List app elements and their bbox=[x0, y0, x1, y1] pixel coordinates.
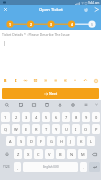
button[interactable]: B bbox=[56, 149, 65, 159]
button[interactable]: 2 bbox=[12, 112, 20, 122]
staticText: 5 bbox=[91, 22, 93, 27]
staticText: I bbox=[75, 127, 77, 132]
button[interactable]: Settings bbox=[66, 100, 79, 109]
button[interactable]: Undo bbox=[81, 76, 90, 85]
staticText: F bbox=[40, 139, 43, 144]
button[interactable]: 6 bbox=[52, 112, 60, 122]
button[interactable]: 1 bbox=[1, 112, 10, 122]
staticText: E bbox=[25, 127, 28, 132]
button[interactable]: I bbox=[72, 124, 80, 134]
button[interactable]: Italic bbox=[11, 76, 20, 85]
button[interactable]: A bbox=[6, 136, 15, 146]
button[interactable]: 5 bbox=[42, 112, 50, 122]
staticText: H bbox=[60, 139, 63, 144]
button[interactable]: Step 3 bbox=[47, 21, 54, 28]
button[interactable]: Translate bbox=[79, 100, 92, 109]
button[interactable]: Step 4 bbox=[68, 21, 75, 28]
button[interactable]: 0 bbox=[92, 112, 100, 122]
button[interactable]: F bbox=[37, 136, 45, 146]
button[interactable]: ?123 bbox=[1, 162, 12, 172]
button[interactable]: Z bbox=[14, 149, 22, 159]
staticText: 9 bbox=[85, 115, 88, 120]
button[interactable]: H bbox=[57, 136, 65, 146]
button[interactable]: Step 5 bbox=[88, 21, 95, 28]
button[interactable]: G bbox=[47, 136, 55, 146]
button[interactable]: S bbox=[17, 136, 25, 146]
staticText: O bbox=[84, 127, 88, 132]
button[interactable]: . bbox=[80, 162, 87, 172]
staticText: I bbox=[15, 78, 17, 83]
button[interactable]: K bbox=[77, 136, 85, 146]
button[interactable]: Code bbox=[51, 76, 60, 85]
staticText: B bbox=[4, 78, 7, 83]
button[interactable]: Bullet list bbox=[61, 76, 70, 85]
staticText: 4 bbox=[71, 22, 73, 27]
staticText: R bbox=[35, 127, 38, 132]
button[interactable]: Shift bbox=[1, 149, 12, 159]
button[interactable]: C bbox=[34, 149, 43, 159]
button[interactable]: 4 bbox=[32, 112, 40, 122]
staticText: , bbox=[17, 165, 18, 170]
button[interactable]: Clipboard bbox=[40, 100, 53, 109]
staticText: Y bbox=[55, 127, 58, 132]
button[interactable]: 8 bbox=[72, 112, 80, 122]
button[interactable]: Y bbox=[52, 124, 60, 134]
button[interactable]: English (UK) bbox=[23, 162, 78, 172]
button[interactable]: Voice input bbox=[53, 100, 66, 109]
staticText: G bbox=[50, 139, 53, 144]
button[interactable]: Send bbox=[91, 5, 101, 14]
staticText: English (UK) bbox=[43, 165, 59, 169]
staticText: 2 bbox=[15, 115, 18, 120]
button[interactable]: R bbox=[32, 124, 40, 134]
button[interactable]: 9 bbox=[82, 112, 90, 122]
button[interactable]: Q bbox=[1, 124, 10, 134]
button[interactable]: Backspace bbox=[89, 149, 100, 159]
button[interactable]: V bbox=[45, 149, 54, 159]
staticText: Open Ticket bbox=[39, 7, 63, 13]
button[interactable]: More bbox=[92, 100, 101, 109]
button[interactable]: GIF bbox=[27, 100, 40, 109]
staticText: 3 bbox=[50, 22, 52, 27]
button[interactable]: J bbox=[67, 136, 75, 146]
button[interactable]: Next bbox=[2, 88, 99, 99]
button[interactable]: D bbox=[27, 136, 35, 146]
button[interactable]: 3 bbox=[22, 112, 30, 122]
button[interactable]: Image bbox=[31, 76, 40, 85]
staticText: U bbox=[65, 127, 68, 132]
staticText: L bbox=[90, 139, 93, 144]
button[interactable]: W bbox=[12, 124, 20, 134]
staticText: Next bbox=[49, 91, 58, 96]
button[interactable]: E bbox=[22, 124, 30, 134]
staticText: 3 bbox=[25, 115, 28, 120]
button[interactable]: Close bbox=[0, 5, 11, 14]
button[interactable]: Stickers bbox=[14, 100, 27, 109]
button[interactable]: 7 bbox=[62, 112, 70, 122]
button[interactable]: U bbox=[62, 124, 70, 134]
button[interactable]: O bbox=[82, 124, 90, 134]
button[interactable]: P bbox=[92, 124, 100, 134]
button[interactable]: Enter bbox=[89, 162, 100, 172]
staticText: 7 bbox=[65, 115, 68, 120]
staticText: 9:44 am bbox=[88, 1, 100, 5]
button[interactable]: N bbox=[67, 149, 76, 159]
button[interactable]: More bbox=[91, 76, 100, 85]
staticText: 1 bbox=[9, 22, 11, 27]
button[interactable]: Step 1 bbox=[6, 21, 13, 28]
button[interactable]: Link bbox=[21, 76, 30, 85]
button[interactable]: T bbox=[42, 124, 50, 134]
staticText: ?123 bbox=[3, 165, 10, 169]
button[interactable]: Quote bbox=[41, 76, 50, 85]
button[interactable]: Attach file bbox=[81, 5, 91, 14]
staticText: T bbox=[45, 127, 48, 132]
button[interactable]: X bbox=[24, 149, 32, 159]
button[interactable]: Numbered list bbox=[71, 76, 80, 85]
staticText: Q bbox=[4, 127, 8, 132]
button[interactable]: Search bbox=[0, 100, 14, 109]
button[interactable]: Step 2 bbox=[27, 21, 34, 28]
staticText: A bbox=[9, 139, 12, 144]
button[interactable]: L bbox=[87, 136, 95, 146]
button[interactable]: , bbox=[14, 162, 21, 172]
button[interactable]: Bold bbox=[1, 76, 10, 85]
button[interactable]: M bbox=[78, 149, 87, 159]
staticText: 2 bbox=[30, 22, 32, 27]
